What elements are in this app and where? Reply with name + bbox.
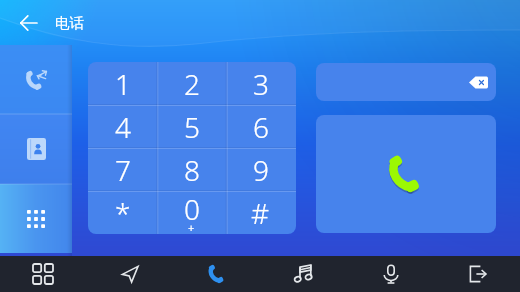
button[interactable]: 5 xyxy=(157,105,226,148)
staticText: + xyxy=(188,220,195,234)
button[interactable]: 1 xyxy=(88,62,157,105)
button[interactable]: Call xyxy=(316,115,496,233)
button[interactable]: Call history xyxy=(0,45,72,114)
button[interactable]: Navigation xyxy=(108,256,152,292)
button[interactable]: 2 xyxy=(157,62,226,105)
staticText: 3 xyxy=(253,65,269,103)
button[interactable]: Dialpad xyxy=(0,184,72,253)
button[interactable]: Voice xyxy=(369,256,413,292)
button[interactable]: 4 xyxy=(88,105,157,148)
button[interactable]: Delete xyxy=(316,63,496,101)
button[interactable]: 9 xyxy=(226,148,295,191)
staticText: 1 xyxy=(115,65,131,103)
button[interactable]: Contacts xyxy=(0,114,72,184)
staticText: # xyxy=(251,194,270,232)
button[interactable]: Phone xyxy=(195,256,239,292)
button[interactable]: Delete xyxy=(467,71,489,93)
staticText: 9 xyxy=(253,151,269,189)
button[interactable]: Music xyxy=(282,256,326,292)
staticText: 8 xyxy=(184,151,200,189)
button[interactable]: 3 xyxy=(226,62,295,105)
button[interactable]: 6 xyxy=(226,105,295,148)
staticText: 4 xyxy=(115,108,131,146)
button[interactable]: 8 xyxy=(157,148,226,191)
staticText: 0 xyxy=(184,190,200,228)
button[interactable]: * xyxy=(88,191,157,234)
staticText: 6 xyxy=(253,108,269,146)
staticText: * xyxy=(115,194,131,232)
button[interactable]: Back xyxy=(10,5,46,41)
button[interactable]: Apps xyxy=(21,256,65,292)
button[interactable]: 7 xyxy=(88,148,157,191)
button[interactable]: 0 xyxy=(157,191,226,234)
button[interactable]: Exit xyxy=(456,256,500,292)
staticText: 5 xyxy=(184,108,200,146)
staticText: 电话 xyxy=(55,14,84,32)
staticText: 2 xyxy=(184,65,200,103)
button[interactable]: # xyxy=(226,191,295,234)
staticText: 7 xyxy=(115,151,131,189)
